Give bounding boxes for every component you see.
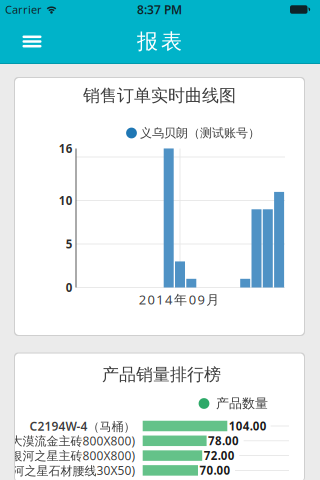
staticText: 销售订单实时曲线图 xyxy=(83,85,236,106)
staticText: 报表 xyxy=(137,29,182,54)
staticText: 10 xyxy=(59,193,73,208)
staticText: (大漠流金主砖800X800) xyxy=(6,433,135,449)
staticText: (银河之星主砖800X800) xyxy=(6,448,135,463)
staticText: 72.00 xyxy=(204,448,235,463)
staticText: Carrier xyxy=(5,2,42,17)
staticText: C2194W-4（马桶） xyxy=(29,418,135,434)
staticText: 78.00 xyxy=(208,433,239,448)
staticText: 5 xyxy=(66,236,73,252)
staticText: 义乌贝朗（测试账号） xyxy=(140,126,260,140)
staticText: 16 xyxy=(59,141,73,156)
staticText: 104.00 xyxy=(229,418,267,434)
staticText: 0 xyxy=(66,280,73,295)
staticText: 8:37 PM xyxy=(137,1,182,17)
staticText: (银河之星石材腰线30X50) xyxy=(0,462,135,478)
staticText: 产品销量排行榜 xyxy=(102,364,221,385)
staticText: 产品数量 xyxy=(216,395,268,411)
button[interactable]: Menu xyxy=(12,24,52,58)
staticText: 2014年09月 xyxy=(139,291,219,308)
staticText: 70.00 xyxy=(199,463,230,478)
